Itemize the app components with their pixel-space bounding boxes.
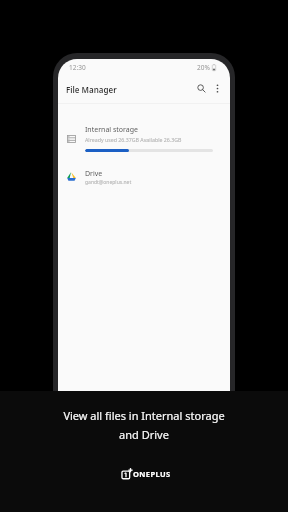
staticText: File Manager (66, 84, 117, 95)
staticText: Drive (85, 169, 103, 179)
staticText: gandt@oneplus.net (85, 179, 132, 186)
button[interactable]: Internal storage (58, 120, 230, 156)
staticText: 12:30 (69, 63, 86, 72)
staticText: Already used 26.37GB Available 26.3GB (85, 136, 182, 143)
button[interactable]: More options (209, 80, 226, 97)
staticText: View all files in Internal storage and D… (63, 408, 225, 442)
button[interactable]: Drive (58, 164, 230, 192)
staticText: Internal storage (85, 125, 138, 135)
staticText: 20% (197, 63, 210, 72)
staticText: ONEPLUS (133, 469, 171, 479)
button[interactable]: Search (193, 80, 210, 97)
